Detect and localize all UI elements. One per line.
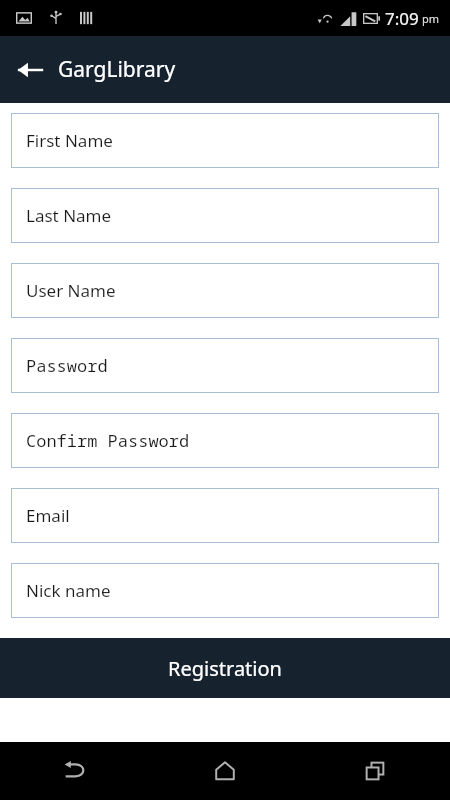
button[interactable]: Email — [11, 488, 439, 543]
staticText: Email — [26, 504, 70, 527]
staticText: Nick name — [26, 579, 111, 602]
staticText: pm — [422, 11, 440, 26]
button[interactable]: Password — [11, 338, 439, 393]
staticText: 7:09 — [385, 7, 419, 30]
staticText: Registration — [168, 655, 282, 682]
staticText: Last Name — [26, 204, 112, 227]
staticText: GargLibrary — [58, 55, 176, 84]
staticText: First Name — [26, 129, 113, 152]
staticText: Confirm Password — [26, 429, 190, 452]
button[interactable]: Registration — [0, 638, 450, 698]
button[interactable]: Recent apps — [300, 742, 450, 800]
button[interactable]: Confirm Password — [11, 413, 439, 468]
button[interactable]: Nick name — [11, 563, 439, 618]
button[interactable]: User Name — [11, 263, 439, 318]
button[interactable]: Home — [150, 742, 300, 800]
staticText: User Name — [26, 279, 116, 302]
button[interactable]: Last Name — [11, 188, 439, 243]
staticText: Password — [26, 354, 108, 377]
button[interactable]: First Name — [11, 113, 439, 168]
button[interactable]: Back — [8, 48, 52, 92]
button[interactable]: Back — [0, 742, 150, 800]
